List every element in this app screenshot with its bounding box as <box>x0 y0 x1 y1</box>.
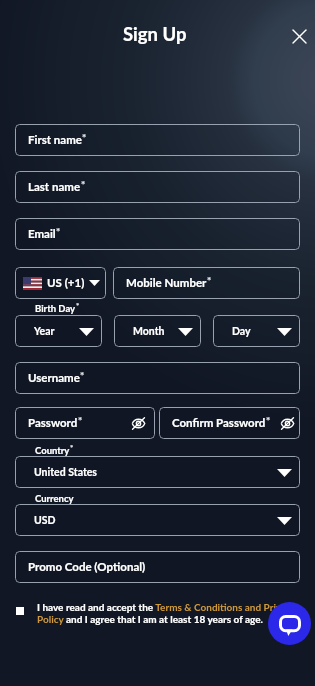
button[interactable]: Password <box>15 407 155 439</box>
button[interactable]: Last name <box>15 171 300 203</box>
button[interactable]: I have read and accept the Terms & Condi… <box>15 601 300 626</box>
button[interactable]: US (+1) <box>15 267 106 299</box>
staticText: * <box>266 414 271 426</box>
staticText: * <box>76 301 80 311</box>
button[interactable]: USD <box>15 504 300 536</box>
staticText: Mobile Number <box>126 276 207 290</box>
button[interactable]: United States <box>15 456 300 488</box>
button[interactable]: Email <box>15 218 300 250</box>
staticText: Birth Day <box>35 303 76 314</box>
button[interactable]: Month <box>114 315 201 347</box>
button[interactable]: Day <box>213 315 300 347</box>
button[interactable]: Close <box>287 24 312 49</box>
button[interactable]: Confirm Password <box>159 407 300 439</box>
staticText: I have read and accept the Terms & Condi… <box>37 601 300 626</box>
staticText: US (+1) <box>47 276 85 290</box>
staticText: Month <box>133 325 165 338</box>
button[interactable]: First name <box>15 124 300 156</box>
staticText: * <box>80 369 85 381</box>
staticText: USD <box>34 514 56 527</box>
staticText: First name <box>28 133 82 147</box>
staticText: * <box>78 414 83 426</box>
button[interactable]: Mobile Number <box>113 267 300 299</box>
button[interactable]: Username <box>15 362 300 394</box>
button[interactable]: Promo Code (Optional) <box>15 551 300 583</box>
staticText: Confirm Password <box>172 416 266 430</box>
button[interactable]: Year <box>15 315 102 347</box>
staticText: Sign Up <box>123 23 187 45</box>
staticText: Promo Code (Optional) <box>28 560 146 574</box>
staticText: United States <box>34 466 97 479</box>
staticText: Last name <box>28 180 81 194</box>
staticText: Username <box>28 371 80 385</box>
staticText: Country <box>35 445 70 456</box>
staticText: Currency <box>35 493 74 504</box>
staticText: * <box>81 178 86 190</box>
staticText: * <box>56 225 61 237</box>
staticText: Year <box>34 325 55 338</box>
staticText: Email <box>28 227 56 241</box>
staticText: * <box>70 443 74 453</box>
button[interactable]: Chat <box>268 602 311 645</box>
staticText: Day <box>232 325 251 338</box>
staticText: Password <box>28 416 78 430</box>
staticText: * <box>207 274 212 286</box>
staticText: * <box>82 131 87 143</box>
